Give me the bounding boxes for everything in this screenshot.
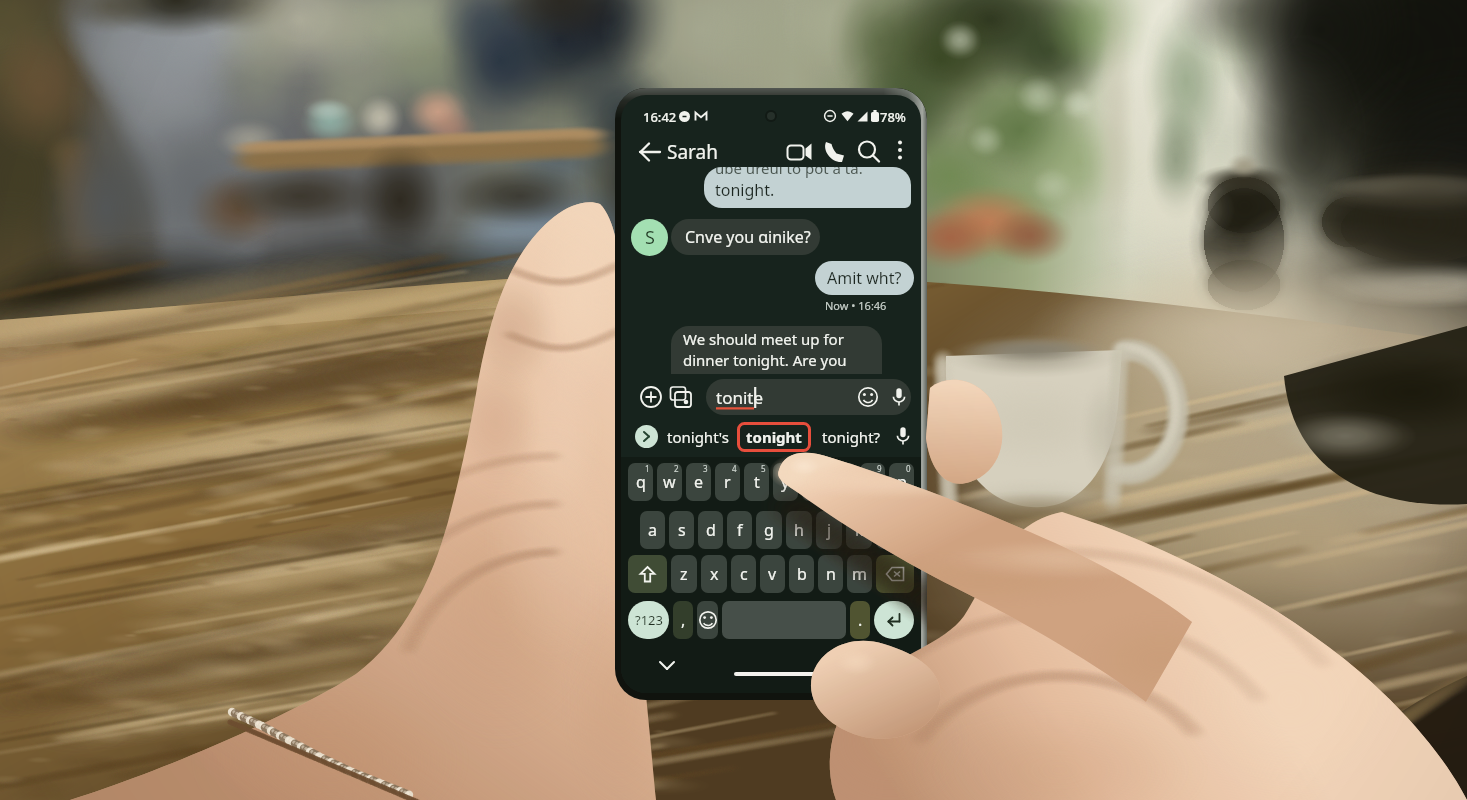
button[interactable]: x — [701, 555, 727, 593]
staticText: 5 — [761, 463, 766, 474]
staticText: tonite — [716, 386, 764, 409]
button[interactable]: u — [802, 463, 827, 501]
button[interactable]: Amit wht? — [815, 261, 914, 295]
staticText: x — [710, 563, 719, 585]
button[interactable]: p — [889, 463, 914, 501]
button[interactable]: t — [744, 463, 769, 501]
staticText: o — [868, 471, 878, 493]
button[interactable]: Voice input — [889, 387, 909, 407]
staticText: e — [694, 471, 704, 493]
staticText: q — [636, 471, 646, 493]
staticText: z — [680, 563, 688, 585]
staticText: 3 — [703, 463, 708, 474]
staticText: g — [764, 519, 774, 541]
button[interactable]: tonight's — [664, 422, 732, 452]
button[interactable]: ube ureul to pot a ta. — [704, 167, 911, 208]
button[interactable]: n — [818, 555, 843, 593]
button[interactable]: Shift — [628, 555, 667, 593]
staticText: ube ureul to pot a ta. — [715, 167, 863, 178]
button[interactable]: c — [731, 555, 756, 593]
button[interactable]: m — [847, 555, 872, 593]
staticText: 4 — [732, 463, 737, 474]
button[interactable]: Video call — [786, 139, 813, 166]
staticText: Now • 16:46 — [825, 298, 887, 313]
button[interactable]: f — [727, 511, 752, 549]
button[interactable]: . — [850, 601, 870, 639]
button[interactable]: v — [760, 555, 785, 593]
button[interactable]: Emoji — [858, 387, 878, 407]
staticText: tonight? — [822, 427, 881, 447]
staticText: S — [645, 225, 655, 250]
staticText: , — [681, 609, 686, 631]
staticText: ?123 — [635, 611, 663, 629]
button[interactable]: q — [628, 463, 653, 501]
button[interactable]: Backspace — [876, 555, 914, 593]
button[interactable]: Hide keyboard — [656, 654, 678, 676]
button[interactable]: r — [715, 463, 740, 501]
button[interactable]: Sarah — [667, 136, 718, 168]
button[interactable]: We should meet up for dinner tonight. Ar… — [671, 326, 882, 374]
staticText: 1 — [645, 463, 650, 474]
staticText: v — [768, 563, 777, 585]
button[interactable]: i — [831, 463, 856, 501]
staticText: h — [794, 519, 804, 541]
staticText: r — [724, 471, 731, 493]
button[interactable]: k — [846, 511, 872, 549]
button[interactable]: y — [773, 463, 798, 501]
button[interactable]: Cnve you ɑinike? — [671, 219, 820, 255]
button[interactable]: o — [860, 463, 885, 501]
button[interactable]: ?123 — [628, 601, 669, 639]
staticText: c — [740, 563, 748, 585]
button[interactable]: s — [669, 511, 694, 549]
staticText: m — [852, 563, 867, 585]
button[interactable]: j — [816, 511, 842, 549]
button[interactable]: More suggestions — [635, 425, 658, 448]
staticText: t — [754, 471, 760, 493]
staticText: n — [826, 563, 836, 585]
staticText: 0 — [906, 463, 911, 474]
staticText: 2 — [674, 463, 679, 474]
staticText: tonight's — [667, 427, 729, 447]
button[interactable]: Emoji keyboard — [697, 601, 718, 639]
staticText: We should meet up for dinner tonight. Ar… — [683, 329, 847, 371]
staticText: j — [827, 519, 832, 541]
staticText: tonight — [746, 427, 802, 447]
button[interactable]: Call — [822, 139, 848, 165]
staticText: 8 — [848, 463, 853, 474]
button[interactable]: Space — [722, 601, 846, 639]
button[interactable]: e — [686, 463, 711, 501]
button[interactable]: b — [789, 555, 814, 593]
button[interactable]: h — [786, 511, 812, 549]
staticText: a — [648, 519, 657, 541]
button[interactable]: g — [756, 511, 782, 549]
button[interactable]: , — [673, 601, 693, 639]
staticText: k — [855, 519, 864, 541]
staticText: Sarah — [667, 139, 718, 165]
staticText: Amit wht? — [827, 267, 902, 289]
staticText: 9 — [877, 463, 882, 474]
button[interactable]: More options — [889, 139, 911, 161]
button[interactable]: Back — [637, 139, 663, 165]
button[interactable]: l — [876, 511, 902, 549]
button[interactable]: z — [671, 555, 697, 593]
button[interactable]: w — [657, 463, 682, 501]
button[interactable]: Add attachment — [640, 386, 662, 408]
button[interactable]: a — [640, 511, 665, 549]
staticText: Cnve you ɑinike? — [685, 226, 811, 248]
button[interactable]: Search — [856, 139, 882, 165]
staticText: w — [663, 471, 676, 493]
button[interactable]: tonight? — [817, 422, 885, 452]
staticText: 16:42 — [643, 108, 677, 126]
staticText: f — [737, 519, 743, 541]
staticText: tonight. — [715, 179, 775, 201]
button[interactable]: Send image — [670, 386, 692, 408]
button[interactable]: d — [698, 511, 723, 549]
button[interactable]: Enter — [874, 601, 914, 639]
staticText: s — [678, 519, 686, 541]
button[interactable]: tonite — [706, 379, 911, 415]
button[interactable]: Voice typing — [893, 426, 913, 446]
button[interactable]: tonight — [737, 422, 811, 452]
